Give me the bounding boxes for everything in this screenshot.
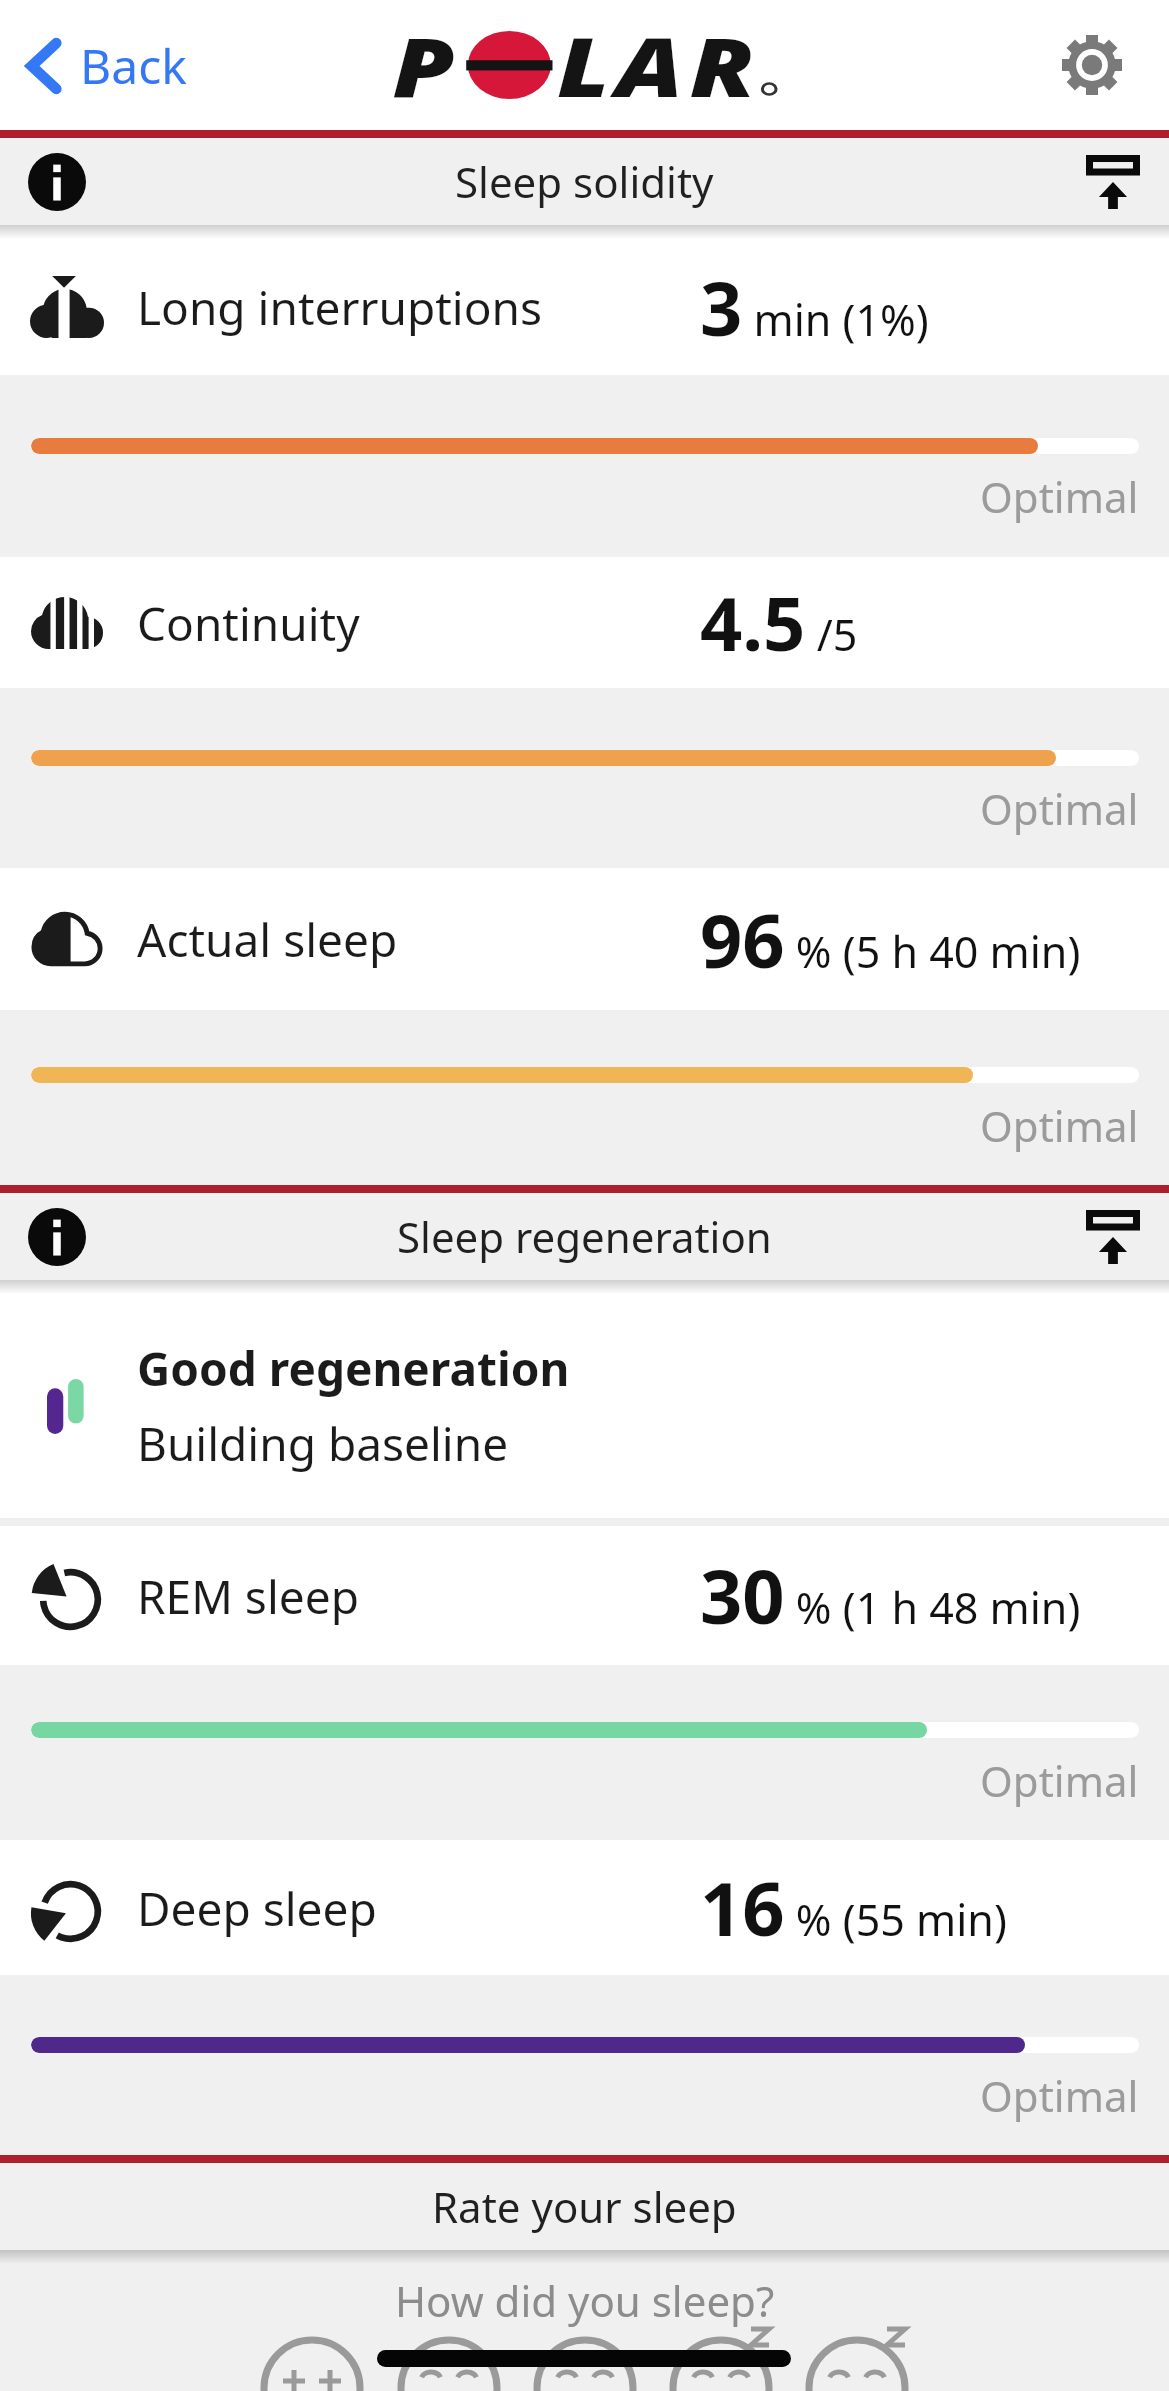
staticText: LAR bbox=[557, 9, 761, 121]
staticText: Sleep solidity bbox=[455, 153, 714, 210]
button[interactable]: Long interruptions bbox=[0, 239, 1169, 375]
staticText: Actual sleep bbox=[137, 908, 398, 971]
staticText: How did you sleep? bbox=[395, 2272, 775, 2329]
staticText: Building baseline bbox=[137, 1412, 509, 1475]
staticText: 4.5 /5 bbox=[700, 572, 858, 673]
button[interactable]: Sleep regeneration bbox=[0, 1193, 1169, 1280]
button[interactable]: Continuity bbox=[0, 557, 1169, 688]
staticText: Back bbox=[80, 33, 187, 98]
staticText: Good regeneration bbox=[137, 1337, 570, 1400]
staticText: Sleep regeneration bbox=[397, 1208, 772, 1265]
button[interactable]: REM sleep bbox=[0, 1526, 1169, 1665]
button[interactable]: Sleep solidity bbox=[0, 138, 1169, 225]
staticText: P bbox=[392, 9, 462, 121]
staticText: 30 % (1 h 48 min) bbox=[700, 1545, 1081, 1646]
button[interactable] bbox=[1062, 35, 1122, 95]
button[interactable]: Back bbox=[24, 33, 187, 98]
staticText: 16 % (55 min) bbox=[700, 1857, 1007, 1958]
staticText: Long interruptions bbox=[137, 276, 542, 339]
staticText: Optimal bbox=[980, 1097, 1139, 1154]
staticText: Rate your sleep bbox=[432, 2178, 737, 2235]
staticText: 3 min (1%) bbox=[700, 257, 929, 358]
button[interactable]: Actual sleep bbox=[0, 868, 1169, 1010]
staticText: Optimal bbox=[980, 2067, 1139, 2124]
staticText: Optimal bbox=[980, 1752, 1139, 1809]
staticText: 96 % (5 h 40 min) bbox=[700, 889, 1081, 990]
button[interactable]: Rate your sleep bbox=[0, 2163, 1169, 2250]
staticText: Deep sleep bbox=[137, 1877, 377, 1940]
button[interactable]: Deep sleep bbox=[0, 1840, 1169, 1975]
staticText: Continuity bbox=[137, 592, 360, 655]
button[interactable]: Good regeneration bbox=[0, 1294, 1169, 1518]
staticText: Optimal bbox=[980, 468, 1139, 525]
staticText: REM sleep bbox=[137, 1565, 359, 1628]
staticText: Optimal bbox=[980, 780, 1139, 837]
